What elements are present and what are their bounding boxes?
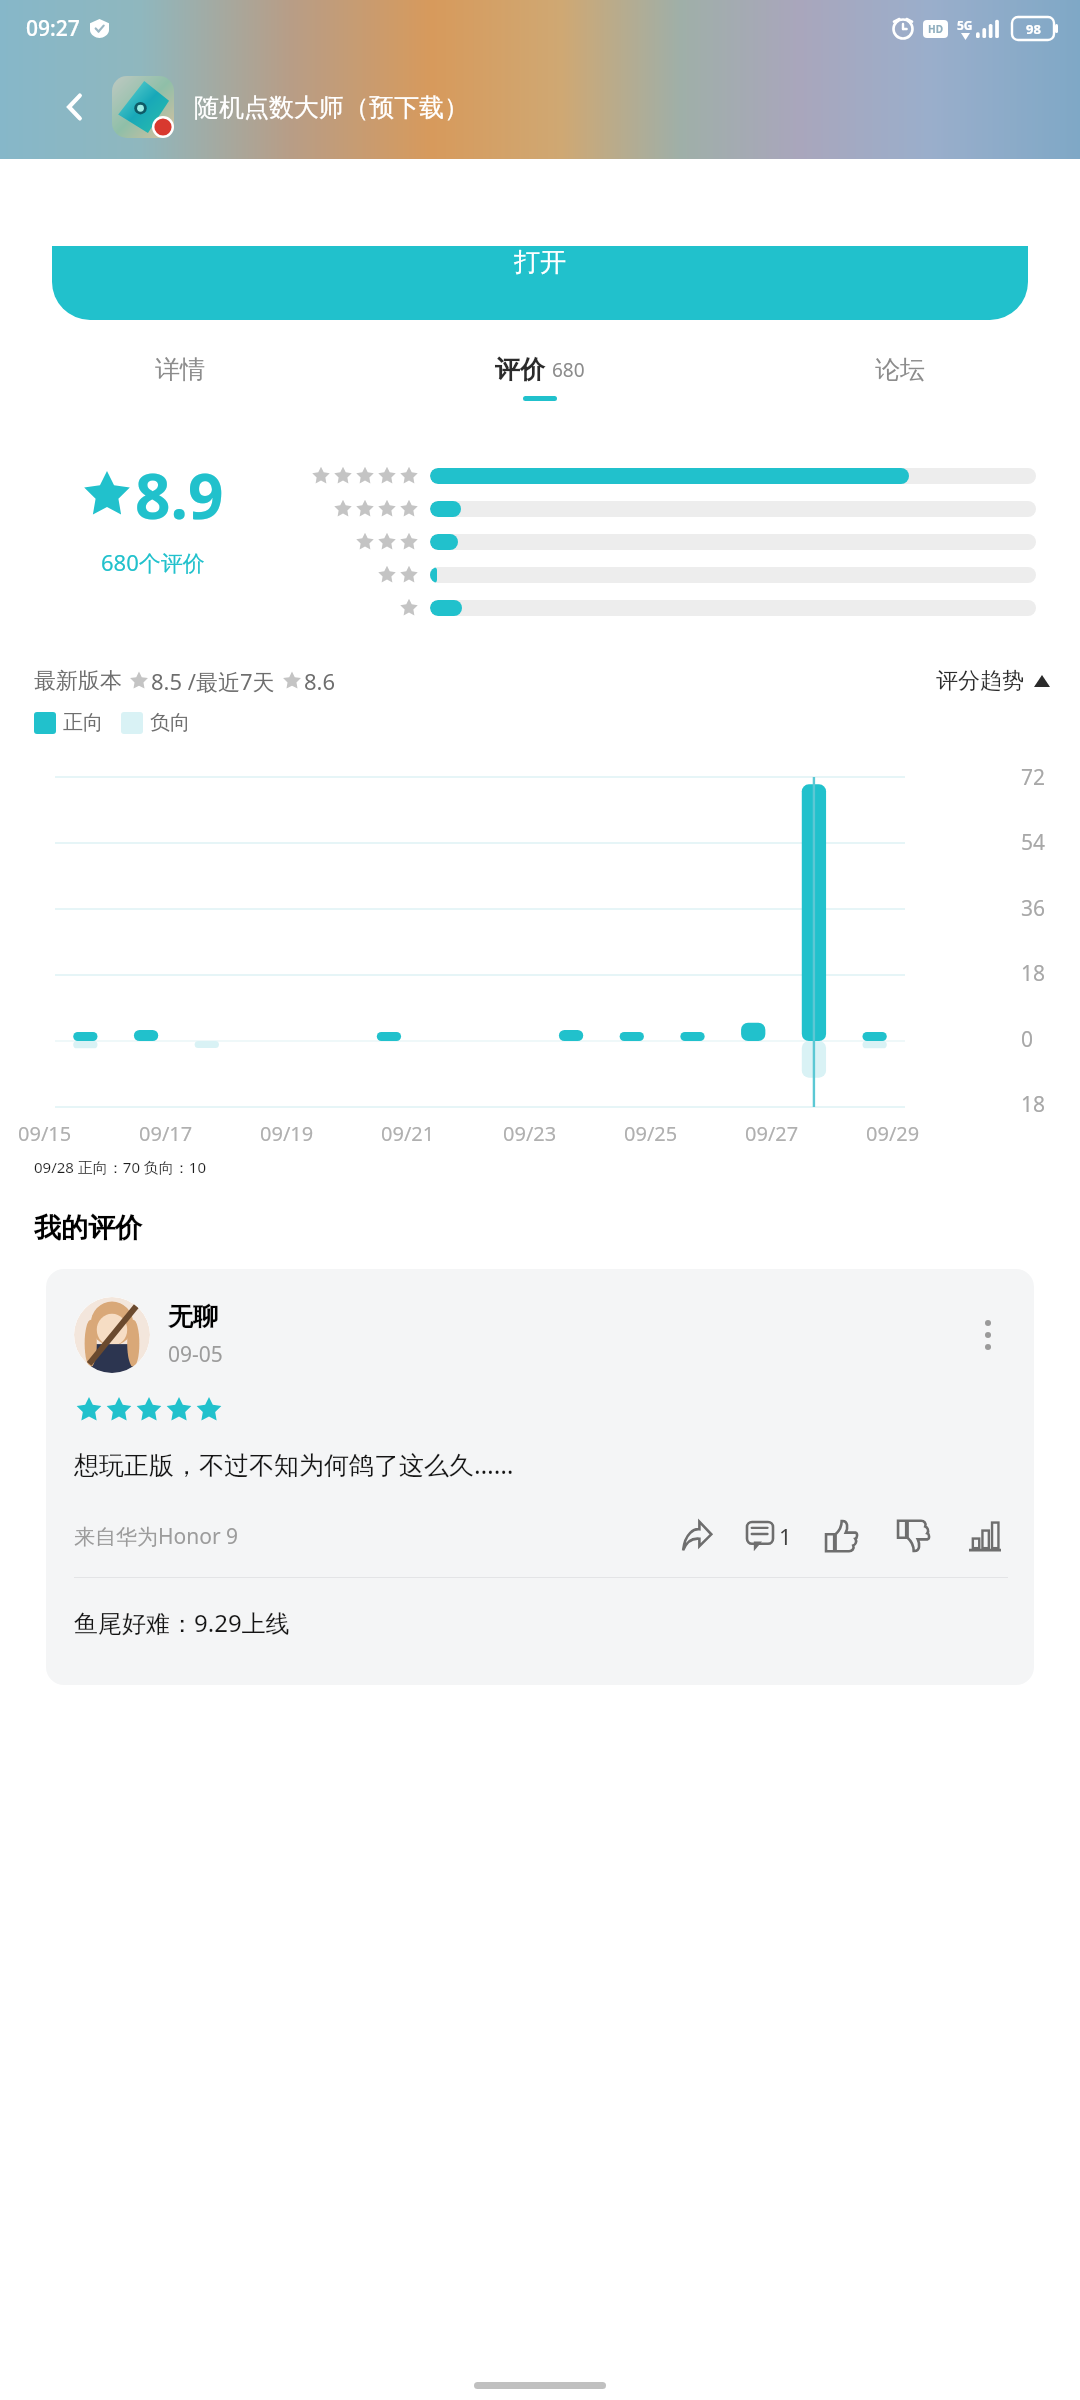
staticText: 0 [1021,1025,1034,1054]
button[interactable]: 点踩 [890,1513,936,1559]
button[interactable]: 数据 [962,1513,1008,1559]
staticText: 来自华为Honor 9 [74,1522,239,1551]
staticText: 5G [957,17,973,33]
staticText: 评价 [495,354,545,385]
button[interactable]: 最新版本 [34,666,1050,696]
button[interactable]: 评论 1 [745,1519,792,1553]
staticText: 72 [1021,763,1046,792]
staticText: 负向 [150,710,190,735]
staticText: 09:27 [26,14,80,43]
button[interactable]: 返回 [52,84,98,130]
staticText: 09/21 [381,1120,435,1147]
button[interactable]: 更多 [968,1315,1008,1355]
staticText: 1 [779,1521,792,1551]
staticText: 8.9 [135,453,224,537]
staticText: 论坛 [875,354,925,385]
button[interactable]: 打开 [52,246,1028,320]
button[interactable]: 论坛 [720,354,1080,401]
staticText: 打开 [514,246,566,279]
staticText: 我的评价 [34,1211,142,1245]
staticText: 8.5 /最近7天 [151,666,275,696]
staticText: 正向 [63,710,103,735]
staticText: 无聊 [168,1301,218,1332]
staticText: 680 [552,357,585,383]
staticText: 54 [1021,828,1046,857]
staticText: 想玩正版，不过不知为何鸽了这么久…… [74,1447,514,1481]
staticText: 09/23 [503,1120,557,1147]
staticText: 09/17 [139,1120,193,1147]
staticText: 09/27 [745,1120,799,1147]
staticText: 09/19 [260,1120,314,1147]
staticText: 09/15 [18,1120,72,1147]
staticText: 详情 [155,354,205,385]
button[interactable]: 分享 [673,1513,719,1559]
staticText: 09/28 正向：70 负向：10 [34,1157,207,1177]
button[interactable]: 点赞 [818,1513,864,1559]
staticText: 09/25 [624,1120,678,1147]
staticText: 09-05 [168,1340,223,1369]
button[interactable]: 无聊 [46,1269,1034,1685]
staticText: 09/29 [866,1120,920,1147]
button[interactable]: 详情 [0,354,360,401]
staticText: 随机点数大师（预下载） [194,92,469,123]
staticText: 最新版本 [34,667,122,695]
staticText: 36 [1021,894,1046,923]
staticText: 8.6 [304,666,336,696]
staticText: 98 [1026,20,1041,38]
staticText: 18 [1021,959,1046,988]
staticText: 18 [1021,1090,1046,1119]
button[interactable]: 评价 [360,354,720,401]
staticText: 鱼尾好难：9.29上线 [74,1606,290,1639]
staticText: 680个评价 [101,547,205,577]
staticText: 评分趋势 [936,667,1024,695]
staticText: HD [928,22,943,36]
